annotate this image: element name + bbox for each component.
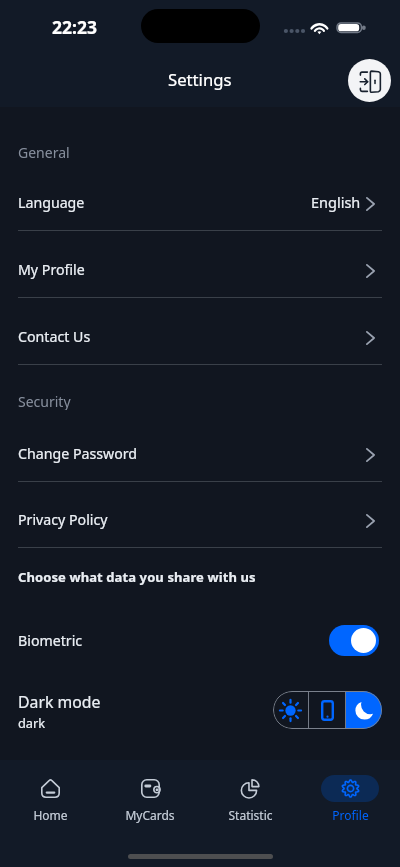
button[interactable]: MyCards <box>100 775 200 823</box>
button[interactable]: Light mode <box>273 691 308 729</box>
staticText: Dark mode <box>18 691 101 713</box>
button[interactable]: Log out <box>348 59 391 102</box>
staticText: Choose what data you share with us <box>18 568 256 586</box>
button[interactable]: System mode <box>309 691 345 729</box>
staticText: Settings <box>168 68 232 91</box>
staticText: My Profile <box>18 260 85 279</box>
staticText: Change Password <box>18 444 138 463</box>
staticText: Home <box>33 807 68 823</box>
button[interactable]: Language <box>18 178 382 231</box>
button[interactable]: Change Password <box>18 429 382 482</box>
staticText: Biometric <box>18 631 83 650</box>
button[interactable]: Home <box>0 775 100 823</box>
staticText: English <box>311 192 361 212</box>
button[interactable]: Contact Us <box>18 312 382 365</box>
staticText: Language <box>18 193 85 212</box>
button[interactable]: Profile <box>300 775 400 823</box>
staticText: General <box>18 143 70 161</box>
button[interactable]: Statistic <box>200 775 300 823</box>
button[interactable]: Biometric toggle <box>329 625 379 656</box>
staticText: MyCards <box>125 807 175 823</box>
staticText: Contact Us <box>18 327 91 346</box>
staticText: Security <box>18 392 71 410</box>
staticText: dark <box>18 714 46 729</box>
staticText: Privacy Policy <box>18 510 108 529</box>
staticText: Statistic <box>228 807 273 823</box>
button[interactable]: My Profile <box>18 245 382 298</box>
button[interactable]: Dark mode <box>346 691 382 729</box>
button[interactable]: Privacy Policy <box>18 495 382 548</box>
staticText: 22:23 <box>52 15 97 39</box>
staticText: Profile <box>332 807 369 823</box>
